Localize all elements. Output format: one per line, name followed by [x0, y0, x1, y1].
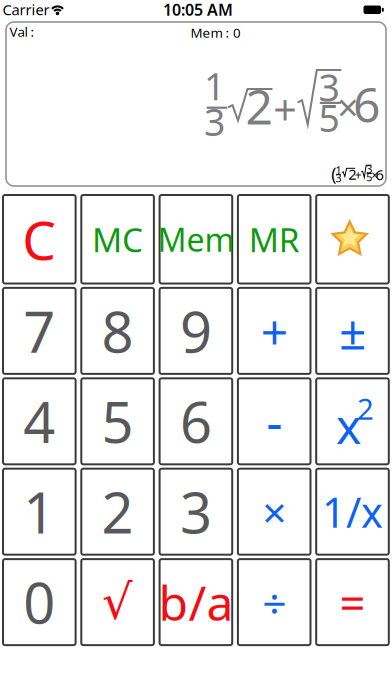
- staticText: 9: [180, 294, 212, 368]
- staticText: 0: [233, 24, 241, 41]
- staticText: 5: [102, 384, 134, 458]
- button[interactable]: 0: [2, 558, 77, 646]
- button[interactable]: [315, 194, 390, 284]
- staticText: -: [266, 388, 282, 455]
- staticText: Mem: [157, 218, 234, 260]
- staticText: =: [339, 572, 365, 632]
- staticText: 1: [335, 163, 341, 177]
- staticText: 3: [204, 97, 225, 146]
- staticText: 7: [23, 294, 55, 368]
- staticText: 1: [204, 61, 225, 111]
- staticText: 5: [318, 93, 339, 142]
- staticText: ×: [262, 483, 286, 540]
- button[interactable]: C: [2, 194, 77, 284]
- staticText: ×: [337, 82, 358, 132]
- button[interactable]: 5: [80, 377, 155, 465]
- button[interactable]: √: [80, 558, 155, 646]
- staticText: C: [22, 204, 56, 275]
- button[interactable]: ±: [315, 287, 390, 375]
- button[interactable]: +: [237, 287, 311, 375]
- button[interactable]: 3: [159, 468, 233, 556]
- staticText: 8: [102, 294, 134, 368]
- staticText: MC: [92, 217, 143, 261]
- staticText: 3: [318, 62, 339, 112]
- staticText: x: [336, 393, 361, 457]
- staticText: +: [355, 167, 362, 183]
- button[interactable]: =: [315, 558, 390, 646]
- button[interactable]: 8: [80, 287, 155, 375]
- button[interactable]: 4: [2, 377, 77, 465]
- button[interactable]: ÷: [237, 558, 311, 646]
- staticText: 5: [366, 170, 372, 184]
- button[interactable]: 7: [2, 287, 77, 375]
- staticText: 10:05 AM: [163, 0, 233, 20]
- staticText: ×: [371, 167, 378, 183]
- staticText: 2: [102, 474, 134, 549]
- button[interactable]: b/a: [159, 558, 233, 646]
- staticText: Val :: [9, 23, 34, 40]
- staticText: Carrier: [2, 0, 49, 19]
- staticText: (: [331, 162, 336, 185]
- staticText: 6: [180, 384, 212, 458]
- staticText: Mem :: [190, 24, 229, 41]
- staticText: 6: [376, 165, 384, 184]
- staticText: +: [261, 299, 288, 363]
- staticText: MR: [249, 217, 300, 261]
- staticText: b/a: [158, 570, 233, 634]
- staticText: 3: [335, 171, 341, 185]
- staticText: 3: [180, 474, 212, 549]
- staticText: 1/x: [322, 484, 383, 539]
- button[interactable]: MR: [237, 194, 311, 284]
- staticText: 2: [357, 389, 374, 428]
- staticText: 2: [348, 164, 356, 184]
- staticText: 1: [23, 474, 55, 549]
- staticText: √: [102, 575, 133, 629]
- button[interactable]: 1: [2, 468, 77, 556]
- button[interactable]: 9: [159, 287, 233, 375]
- staticText: ÷: [262, 574, 286, 630]
- staticText: +: [273, 82, 297, 137]
- button[interactable]: x: [315, 377, 390, 465]
- staticText: 4: [23, 384, 55, 458]
- staticText: 3: [366, 162, 372, 176]
- staticText: 6: [353, 72, 380, 136]
- button[interactable]: 1/x: [315, 468, 390, 556]
- staticText: 2: [245, 74, 272, 138]
- button[interactable]: -: [237, 377, 311, 465]
- button[interactable]: Mem: [159, 194, 233, 284]
- button[interactable]: ×: [237, 468, 311, 556]
- button[interactable]: MC: [80, 194, 155, 284]
- staticText: 0: [23, 565, 55, 639]
- button[interactable]: 2: [80, 468, 155, 556]
- staticText: ±: [339, 299, 366, 363]
- button[interactable]: 6: [159, 377, 233, 465]
